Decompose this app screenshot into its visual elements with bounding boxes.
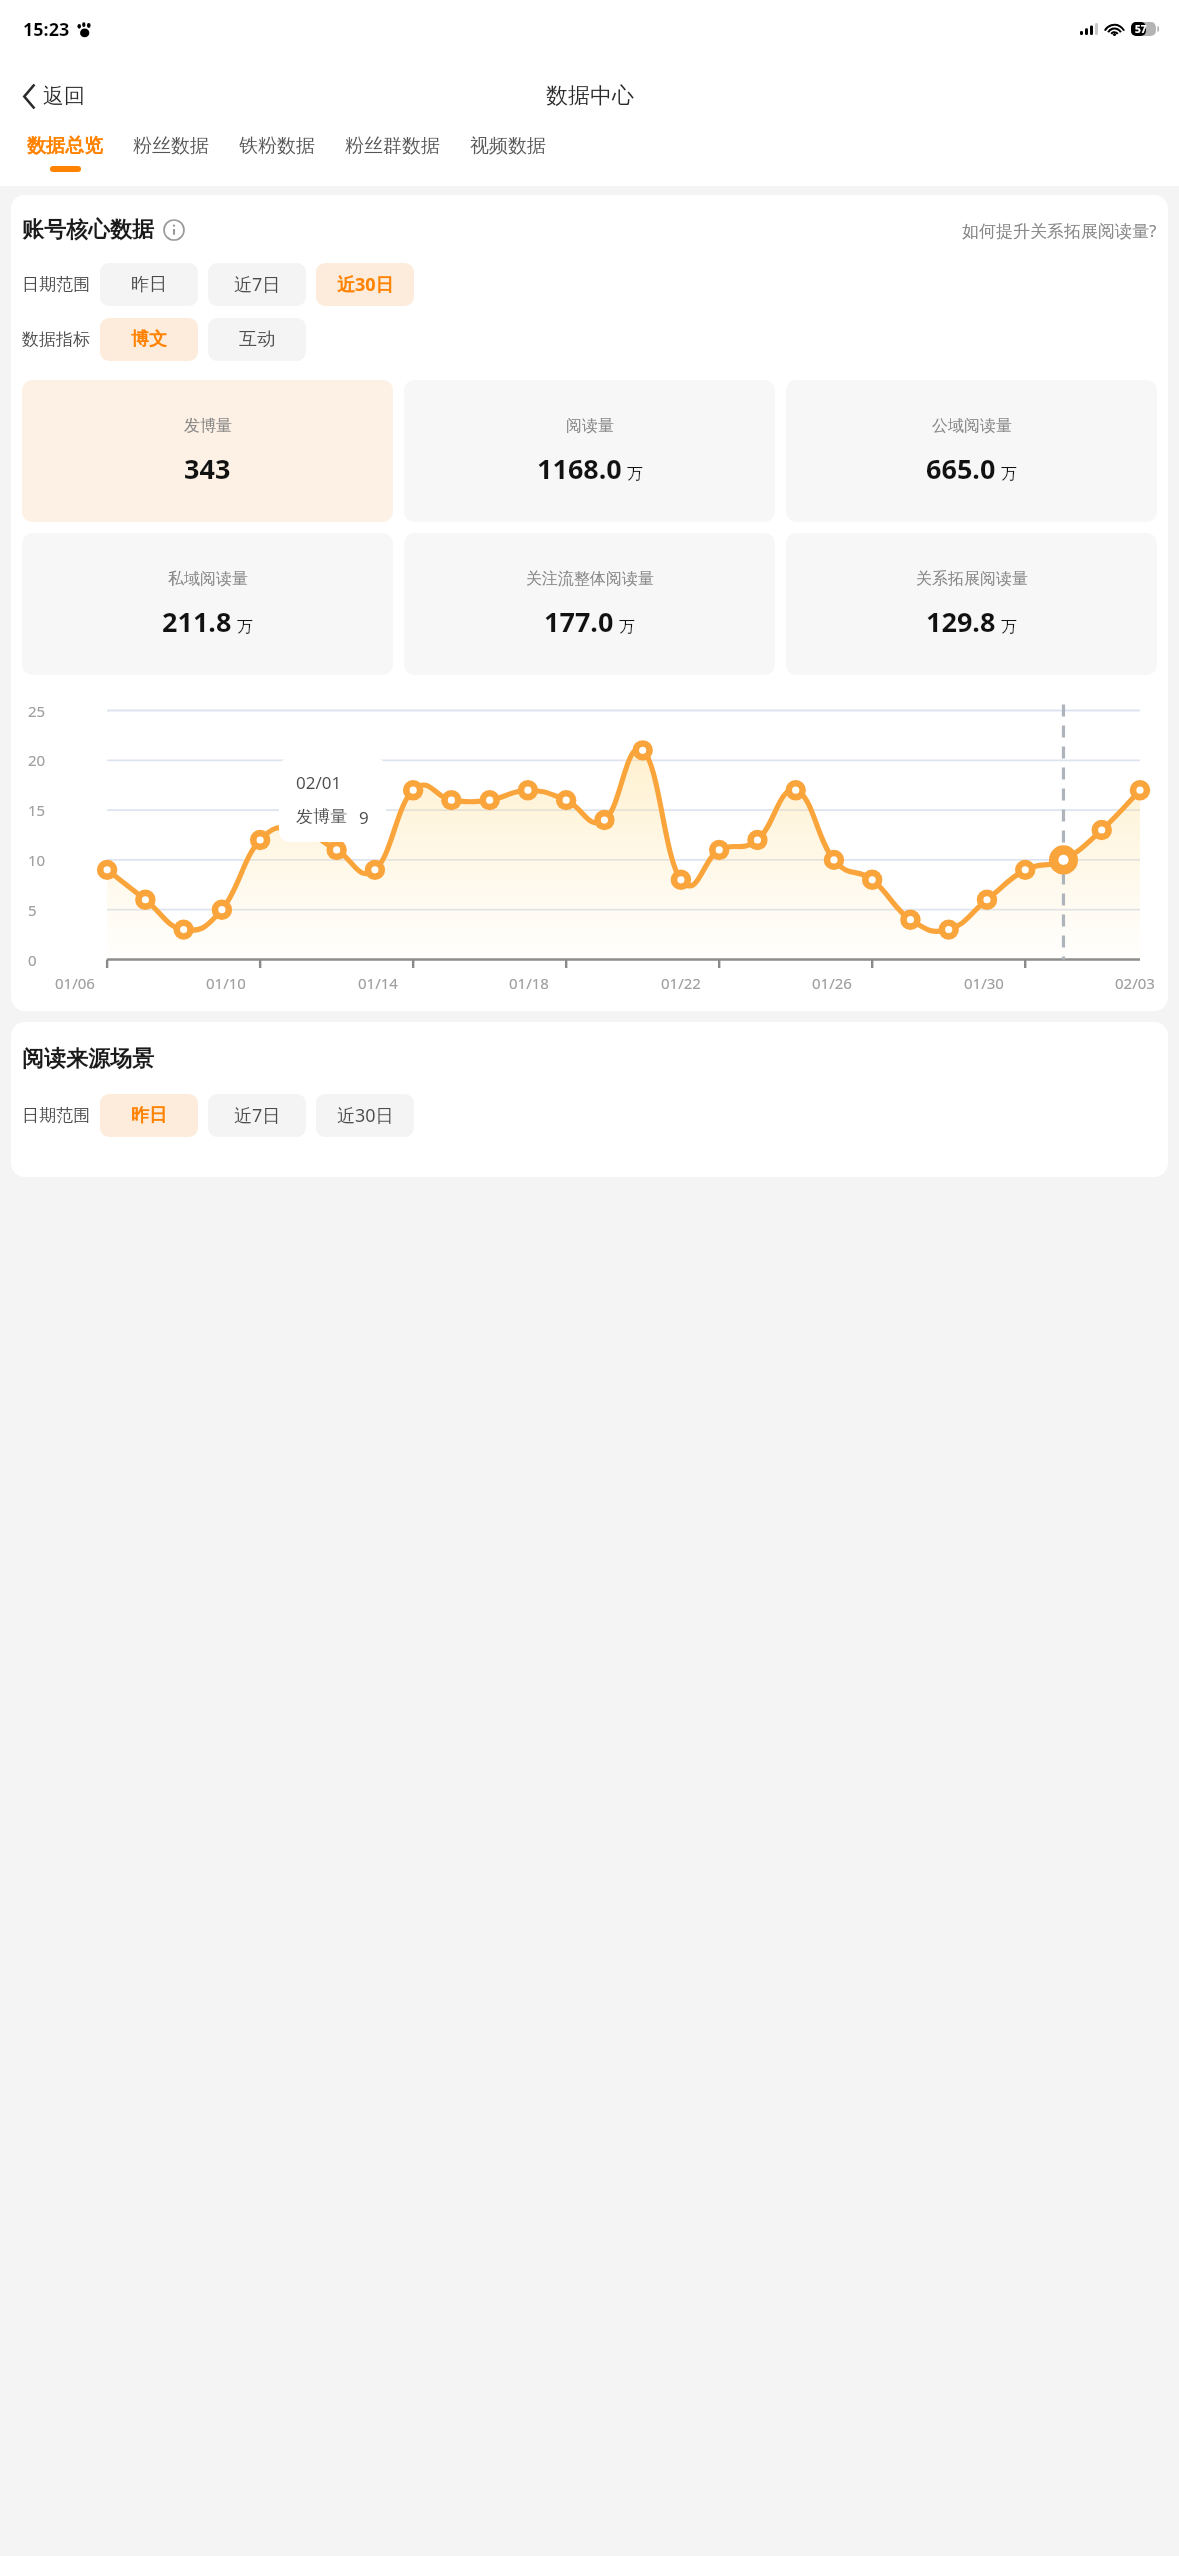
staticText: 数据总览 <box>27 134 103 158</box>
button[interactable]: 发博量 <box>22 380 393 522</box>
staticText: 昨日 <box>131 1104 167 1127</box>
staticText: 近30日 <box>337 1103 394 1128</box>
staticText: 铁粉数据 <box>239 134 315 158</box>
button[interactable]: 近7日 <box>208 1094 306 1137</box>
staticText: 数据指标 <box>22 329 90 350</box>
button[interactable]: 昨日 <box>100 263 198 306</box>
button[interactable]: 公域阅读量 <box>786 380 1157 522</box>
staticText: 211.8 <box>162 603 232 640</box>
staticText: 177.0 <box>544 603 614 640</box>
button[interactable]: 视频数据 <box>455 134 561 166</box>
button[interactable]: 关注流整体阅读量 <box>404 533 775 675</box>
staticText: 01/18 <box>509 973 549 993</box>
staticText: 02/03 <box>1115 973 1155 993</box>
staticText: 昨日 <box>131 273 167 296</box>
staticText: 1168.0 <box>537 450 622 487</box>
staticText: 01/30 <box>964 973 1004 993</box>
button[interactable]: 粉丝数据 <box>118 134 224 166</box>
staticText: 万 <box>1001 617 1017 637</box>
staticText: 关注流整体阅读量 <box>526 569 654 589</box>
staticText: 账号核心数据 <box>22 216 154 244</box>
button[interactable]: 近30日 <box>316 1094 414 1137</box>
button[interactable]: 阅读量 <box>404 380 775 522</box>
staticText: 关系拓展阅读量 <box>916 569 1028 589</box>
staticText: 博文 <box>131 328 167 351</box>
button[interactable]: 如何提升关系拓展阅读量? <box>962 219 1157 242</box>
staticText: 万 <box>619 617 635 637</box>
button[interactable]: 近30日 <box>316 263 414 306</box>
staticText: 阅读来源场景 <box>22 1045 154 1073</box>
staticText: 25 <box>28 701 46 721</box>
staticText: 01/10 <box>206 973 246 993</box>
button[interactable]: 数据总览 <box>12 134 118 172</box>
staticText: 20 <box>28 750 46 770</box>
staticText: 57 <box>1135 22 1147 36</box>
staticText: 万 <box>237 617 253 637</box>
staticText: 近7日 <box>234 1103 281 1128</box>
staticText: 近7日 <box>234 272 281 297</box>
staticText: 01/06 <box>55 973 95 993</box>
staticText: 粉丝数据 <box>133 134 209 158</box>
button[interactable]: 铁粉数据 <box>224 134 330 166</box>
staticText: 665.0 <box>926 450 996 487</box>
staticText: 粉丝群数据 <box>345 134 440 158</box>
staticText: 阅读量 <box>566 416 614 436</box>
staticText: 万 <box>627 464 643 484</box>
staticText: 10 <box>28 850 46 870</box>
staticText: 数据中心 <box>546 82 634 110</box>
staticText: 343 <box>184 450 231 487</box>
staticText: 15:23 <box>23 17 70 42</box>
staticText: 近30日 <box>337 272 394 297</box>
staticText: 01/26 <box>812 973 852 993</box>
button[interactable]: 私域阅读量 <box>22 533 393 675</box>
staticText: 01/14 <box>358 973 398 993</box>
button[interactable]: 关系拓展阅读量 <box>786 533 1157 675</box>
staticText: 9 <box>359 806 369 829</box>
staticText: 发博量 <box>184 416 232 436</box>
staticText: 返回 <box>43 83 85 109</box>
staticText: 5 <box>28 900 37 920</box>
button[interactable]: 博文 <box>100 318 198 361</box>
staticText: 日期范围 <box>22 274 90 295</box>
button[interactable]: 昨日 <box>100 1094 198 1137</box>
staticText: 01/22 <box>661 973 701 993</box>
button[interactable]: 近7日 <box>208 263 306 306</box>
staticText: 私域阅读量 <box>168 569 248 589</box>
staticText: 万 <box>1001 464 1017 484</box>
staticText: 互动 <box>239 328 275 351</box>
staticText: 02/01 <box>296 771 342 794</box>
staticText: 日期范围 <box>22 1105 90 1126</box>
staticText: 129.8 <box>926 603 996 640</box>
staticText: 0 <box>28 950 37 970</box>
button[interactable]: 返回 <box>18 75 90 117</box>
button[interactable]: 说明 <box>163 219 185 241</box>
staticText: 15 <box>28 800 46 820</box>
staticText: 视频数据 <box>470 134 546 158</box>
staticText: 公域阅读量 <box>932 416 1012 436</box>
button[interactable]: 互动 <box>208 318 306 361</box>
button[interactable]: 粉丝群数据 <box>330 134 455 166</box>
staticText: 发博量 <box>296 806 347 827</box>
